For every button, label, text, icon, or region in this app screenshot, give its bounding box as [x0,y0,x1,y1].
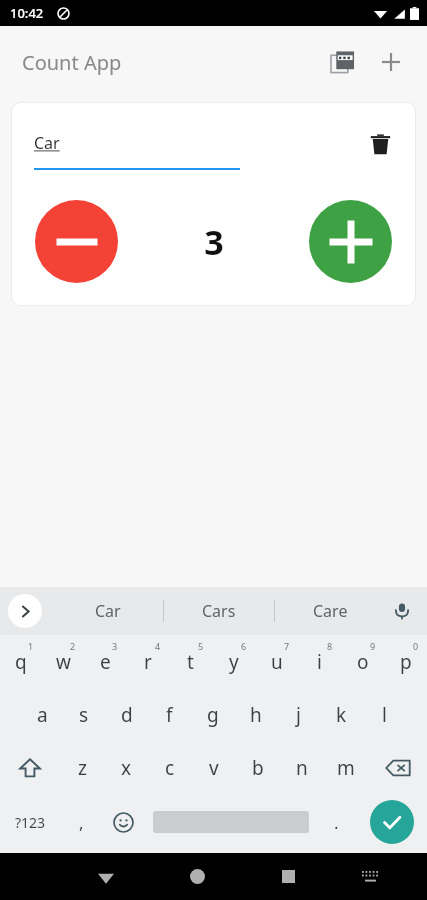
staticText: Cars [202,600,236,622]
staticText: y [229,649,239,675]
staticText: v [209,755,219,781]
button[interactable]: Emoji [101,795,146,849]
button[interactable]: r [126,635,169,688]
button[interactable]: o [341,635,384,688]
staticText: a [37,702,48,728]
button[interactable]: Space [146,795,316,849]
staticText: . [334,811,339,834]
staticText: q [15,649,27,675]
button[interactable]: w [42,635,84,688]
button[interactable]: Car [52,587,163,635]
staticText: Count App [22,49,122,76]
staticText: 5 [198,640,204,652]
button[interactable]: j [277,688,320,741]
button[interactable]: g [191,688,234,741]
staticText: u [271,649,283,675]
button[interactable]: Cars [164,587,274,635]
staticText: d [121,702,133,728]
staticText: 3 [112,640,118,652]
staticText: p [400,649,412,675]
button[interactable]: x [104,741,148,795]
button[interactable]: Shift [0,741,60,795]
staticText: g [207,702,219,728]
staticText: w [56,649,71,675]
staticText: t [187,649,194,675]
staticText: ?123 [15,813,46,832]
staticText: 9 [370,640,376,652]
staticText: 6 [241,640,247,652]
staticText: 1 [28,640,34,652]
staticText: b [252,755,264,781]
staticText: f [166,702,173,728]
button[interactable]: t [169,635,212,688]
staticText: r [144,649,152,675]
button[interactable]: d [105,688,148,741]
button[interactable]: b [236,741,280,795]
button[interactable]: h [234,688,277,741]
button[interactable]: Recent apps [243,853,334,900]
staticText: Car [34,132,60,154]
staticText: s [79,702,89,728]
button[interactable]: c [148,741,192,795]
button[interactable]: e [84,635,126,688]
button[interactable]: m [324,741,368,795]
button[interactable]: a [21,688,63,741]
button[interactable]: ?123 [0,795,61,849]
staticText: k [336,702,347,728]
button[interactable]: i [298,635,341,688]
staticText: 10:42 [10,4,44,22]
button[interactable]: Delete counter [358,122,402,166]
staticText: j [296,702,301,728]
staticText: z [78,755,87,781]
staticText: Car [95,600,121,622]
staticText: 2 [70,640,76,652]
button[interactable]: Backspace [368,741,427,795]
button[interactable]: s [63,688,105,741]
staticText: h [250,702,262,728]
button[interactable]: k [320,688,363,741]
button[interactable]: . [316,795,356,849]
button[interactable]: p [384,635,427,688]
staticText: , [79,811,84,834]
button[interactable]: u [255,635,298,688]
staticText: Care [313,600,348,622]
button[interactable]: More suggestions [8,594,42,628]
button[interactable]: y [212,635,255,688]
button[interactable]: Export PDF [319,38,367,86]
button[interactable]: Switch keyboard [334,853,407,900]
button[interactable]: Voice input [385,594,419,628]
staticText: e [100,649,111,675]
staticText: x [121,755,132,781]
button[interactable]: Home [152,853,243,900]
staticText: n [296,755,308,781]
button[interactable]: n [280,741,324,795]
button[interactable]: q [0,635,42,688]
button[interactable]: Care [275,587,385,635]
button[interactable]: Done [370,800,414,844]
button[interactable]: f [148,688,191,741]
staticText: 0 [413,640,419,652]
button[interactable]: Increment [309,200,392,283]
staticText: c [165,755,175,781]
button[interactable]: Back [60,853,152,900]
button[interactable]: z [60,741,104,795]
button[interactable]: Add counter [367,38,415,86]
staticText: i [317,649,322,675]
button[interactable]: v [192,741,236,795]
button[interactable]: , [61,795,101,849]
staticText: 3 [204,219,224,265]
staticText: o [357,649,369,675]
button[interactable]: Decrement [35,200,118,283]
staticText: l [382,702,387,728]
staticText: 7 [284,640,290,652]
staticText: 8 [327,640,333,652]
staticText: m [337,755,355,781]
staticText: 4 [155,640,161,652]
button[interactable]: l [363,688,406,741]
